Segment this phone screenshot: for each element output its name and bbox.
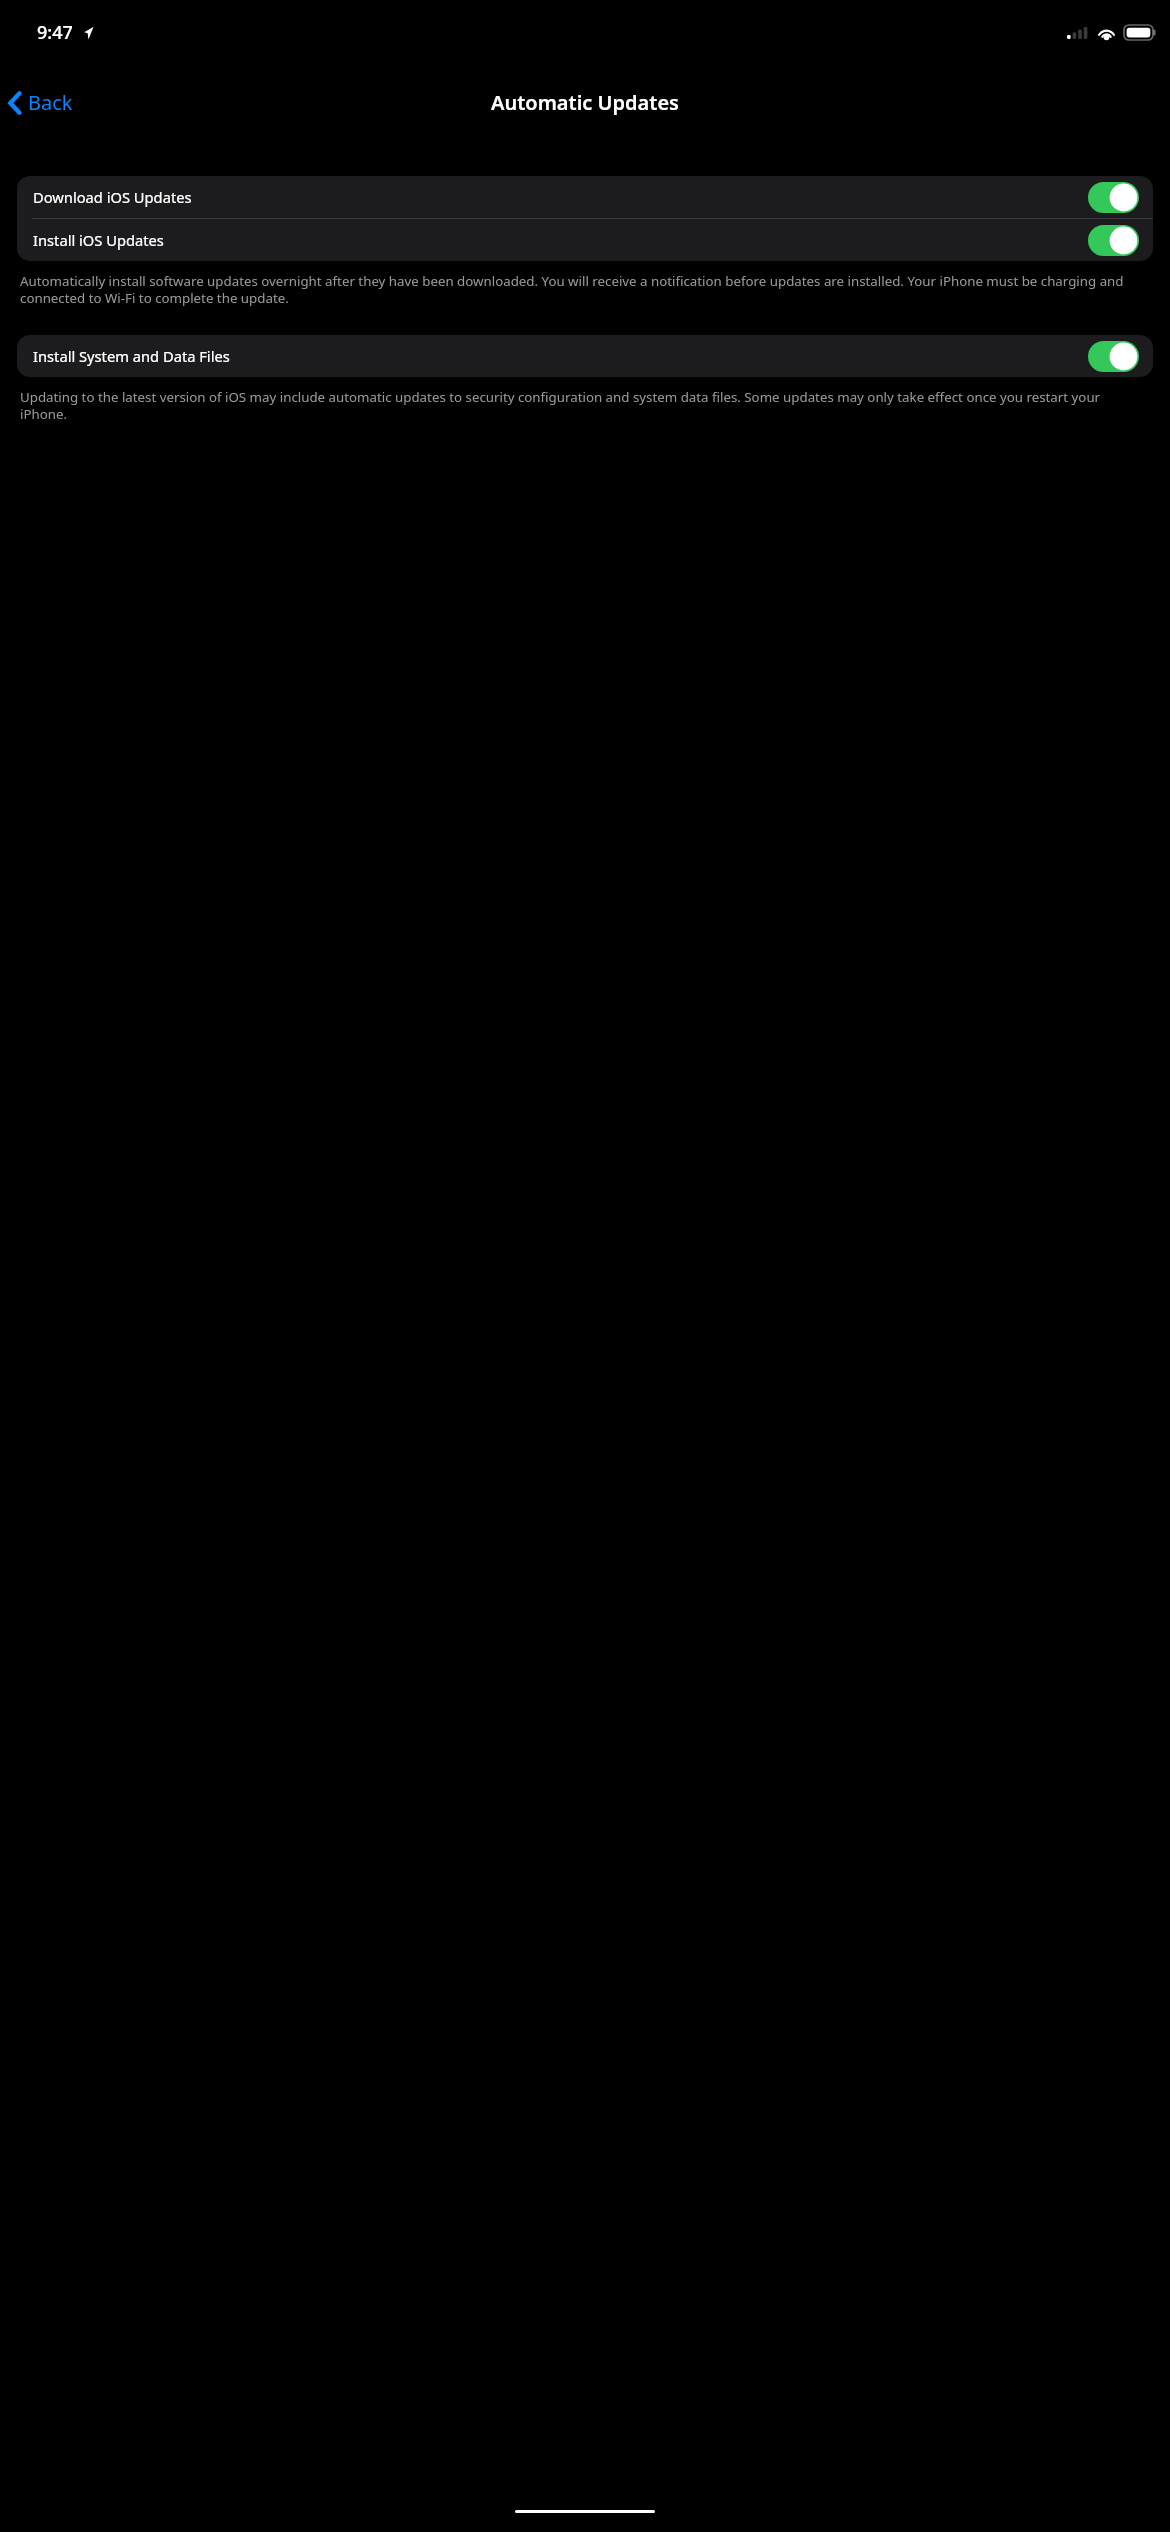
button[interactable]: Install iOS Updates <box>17 219 1153 261</box>
staticText: Download iOS Updates <box>33 187 1088 207</box>
button[interactable]: Toggle on <box>1088 182 1139 213</box>
button[interactable]: Toggle on <box>1088 225 1139 256</box>
button[interactable]: Install System and Data Files <box>17 335 1153 377</box>
staticText: Automatically install software updates o… <box>20 272 1150 307</box>
staticText: Install iOS Updates <box>33 230 1088 250</box>
staticText: Install System and Data Files <box>33 346 1088 366</box>
staticText: Updating to the latest version of iOS ma… <box>20 388 1150 423</box>
button[interactable]: Back <box>0 83 85 122</box>
staticText: 9:47 <box>37 20 73 45</box>
button[interactable]: Toggle on <box>1088 341 1139 372</box>
staticText: Back <box>28 89 73 116</box>
staticText: Automatic Updates <box>491 89 679 116</box>
button[interactable]: Download iOS Updates <box>17 176 1153 218</box>
